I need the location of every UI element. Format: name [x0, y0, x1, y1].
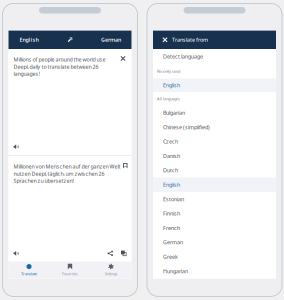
staticText: English: [19, 36, 38, 43]
button[interactable]: Copy: [113, 251, 126, 256]
button[interactable]: Clear text: [120, 56, 125, 61]
staticText: German: [163, 239, 183, 246]
button[interactable]: Listen to source text: [13, 144, 19, 149]
staticText: Bulgarian: [163, 109, 185, 116]
button[interactable]: English: [8, 31, 49, 49]
staticText: Czech: [163, 138, 178, 145]
button[interactable]: Swap languages: [62, 31, 78, 49]
staticText: Translate from: [172, 36, 208, 43]
staticText: Recently used: [157, 69, 180, 74]
staticText: Danish: [163, 152, 180, 159]
staticText: Detect language: [163, 53, 203, 60]
staticText: All languages: [157, 96, 180, 101]
staticText: Greek: [163, 253, 178, 260]
staticText: English: [163, 181, 180, 188]
staticText: Settings: [104, 271, 117, 276]
button[interactable]: Hungarian: [153, 264, 276, 278]
button[interactable]: Detect language: [153, 49, 276, 64]
button[interactable]: Favorites: [49, 262, 90, 278]
button[interactable]: Estonian: [153, 192, 276, 206]
staticText: Estonian: [163, 196, 184, 203]
button[interactable]: Translate: [8, 262, 49, 278]
button[interactable]: Dutch: [153, 163, 276, 177]
button[interactable]: English: [153, 78, 276, 92]
staticText: Favorites: [62, 271, 78, 276]
staticText: German: [101, 36, 121, 43]
staticText: English: [163, 82, 180, 89]
staticText: French: [163, 224, 180, 231]
button[interactable]: French: [153, 221, 276, 235]
button[interactable]: German: [153, 235, 276, 249]
staticText: Translate: [21, 271, 37, 276]
button[interactable]: Finnish: [153, 206, 276, 221]
staticText: Finnish: [163, 210, 180, 217]
staticText: Dutch: [163, 167, 178, 174]
button[interactable]: Listen to translation: [13, 251, 19, 256]
button[interactable]: Settings: [90, 262, 131, 278]
staticText: Hungarian: [163, 268, 188, 275]
button[interactable]: German: [90, 31, 131, 49]
button[interactable]: Save to favorites: [123, 163, 127, 168]
button[interactable]: English: [153, 177, 276, 192]
button[interactable]: Danish: [153, 149, 276, 163]
button[interactable]: Share: [107, 251, 113, 256]
staticText: Millionen von Menschen auf der ganzen We…: [13, 163, 120, 184]
button[interactable]: Greek: [153, 249, 276, 264]
staticText: Chinese (simplified): [163, 124, 210, 131]
button[interactable]: Bulgarian: [153, 105, 276, 120]
button[interactable]: Close: [158, 31, 172, 49]
staticText: Millions of people around the world use …: [13, 56, 105, 77]
button[interactable]: Czech: [153, 134, 276, 149]
button[interactable]: Chinese (simplified): [153, 120, 276, 134]
